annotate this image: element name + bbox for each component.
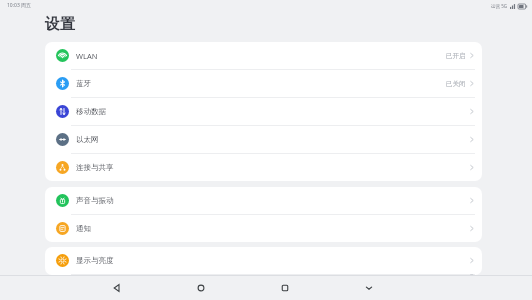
staticText: 已关闭 [446, 80, 466, 88]
staticText: 连接与共享 [76, 163, 114, 172]
staticText: 10:03 周五 [7, 2, 32, 9]
staticText: 声音与振动 [76, 196, 114, 205]
button[interactable]: 显示与亮度 [45, 247, 482, 274]
button[interactable]: 连接与共享 [45, 154, 482, 181]
staticText: 显示与亮度 [76, 256, 114, 265]
button[interactable]: Back [106, 277, 128, 299]
staticText: 通知 [76, 224, 91, 233]
staticText: 设置 [45, 15, 75, 34]
button[interactable]: Home [190, 277, 212, 299]
staticText: 运营 5G [491, 3, 508, 9]
button[interactable]: Hide keyboard [358, 277, 380, 299]
staticText: 移动数据 [76, 107, 106, 116]
staticText: 蓝牙 [76, 79, 91, 88]
staticText: WLAN [76, 51, 98, 61]
button[interactable]: 通知 [45, 215, 482, 242]
button[interactable]: Recent apps [274, 277, 296, 299]
button[interactable]: 以太网 [45, 126, 482, 153]
button[interactable]: 声音与振动 [45, 187, 482, 214]
staticText: 以太网 [76, 135, 99, 144]
button[interactable]: 蓝牙 [45, 70, 482, 97]
button[interactable]: WLAN [45, 42, 482, 69]
staticText: 已开启 [446, 52, 466, 60]
button[interactable]: 移动数据 [45, 98, 482, 125]
